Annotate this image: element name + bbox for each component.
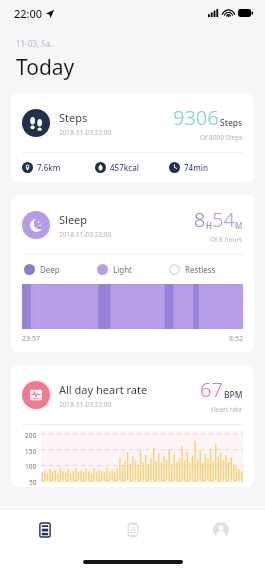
- button[interactable]: Restless: [169, 264, 241, 275]
- staticText: 11-03, Sa.: [16, 38, 53, 49]
- staticText: 7.6km: [37, 162, 61, 173]
- staticText: Light: [113, 264, 133, 275]
- staticText: H: [206, 220, 212, 231]
- button[interactable]: All day heart rate: [11, 365, 254, 487]
- staticText: BPM: [224, 389, 243, 401]
- button[interactable]: 74min: [169, 162, 243, 173]
- staticText: 23:57: [22, 334, 40, 344]
- staticText: 150: [25, 447, 37, 456]
- staticText: 8: [194, 206, 206, 233]
- staticText: 8:52: [229, 334, 243, 344]
- button[interactable]: Steps: [11, 93, 254, 182]
- staticText: Heart rate: [211, 405, 243, 414]
- staticText: Sleep: [59, 212, 88, 227]
- button[interactable]: Profile: [177, 510, 265, 550]
- staticText: Deep: [40, 264, 60, 275]
- staticText: 2018-11-03 22:00: [59, 230, 112, 239]
- button[interactable]: Reports: [0, 510, 89, 550]
- button[interactable]: 7.6km: [22, 162, 95, 173]
- staticText: M: [235, 220, 243, 231]
- staticText: Steps: [220, 117, 243, 129]
- staticText: 457kcal: [110, 162, 139, 173]
- staticText: 22:00: [14, 6, 43, 21]
- staticText: Of 8000 Steps: [200, 133, 243, 142]
- staticText: 100: [25, 462, 37, 471]
- button[interactable]: Sleep: [11, 195, 254, 352]
- staticText: All day heart rate: [59, 382, 148, 397]
- staticText: 2018-11-03 22:00: [59, 400, 112, 409]
- staticText: Restless: [185, 264, 216, 275]
- button[interactable]: 457kcal: [95, 162, 169, 173]
- staticText: Of 8 hours: [210, 235, 243, 244]
- button[interactable]: Light: [97, 264, 169, 275]
- staticText: 2018-11-03 22:00: [59, 128, 112, 137]
- button[interactable]: Device: [89, 510, 177, 550]
- button[interactable]: Deep: [24, 264, 97, 275]
- staticText: 54: [212, 206, 235, 233]
- staticText: 67: [200, 376, 223, 403]
- staticText: Today: [16, 53, 75, 82]
- staticText: 74min: [184, 162, 208, 173]
- staticText: Steps: [59, 110, 88, 125]
- staticText: 200: [25, 431, 37, 440]
- staticText: 9306: [173, 104, 219, 131]
- staticText: 50: [29, 478, 37, 487]
